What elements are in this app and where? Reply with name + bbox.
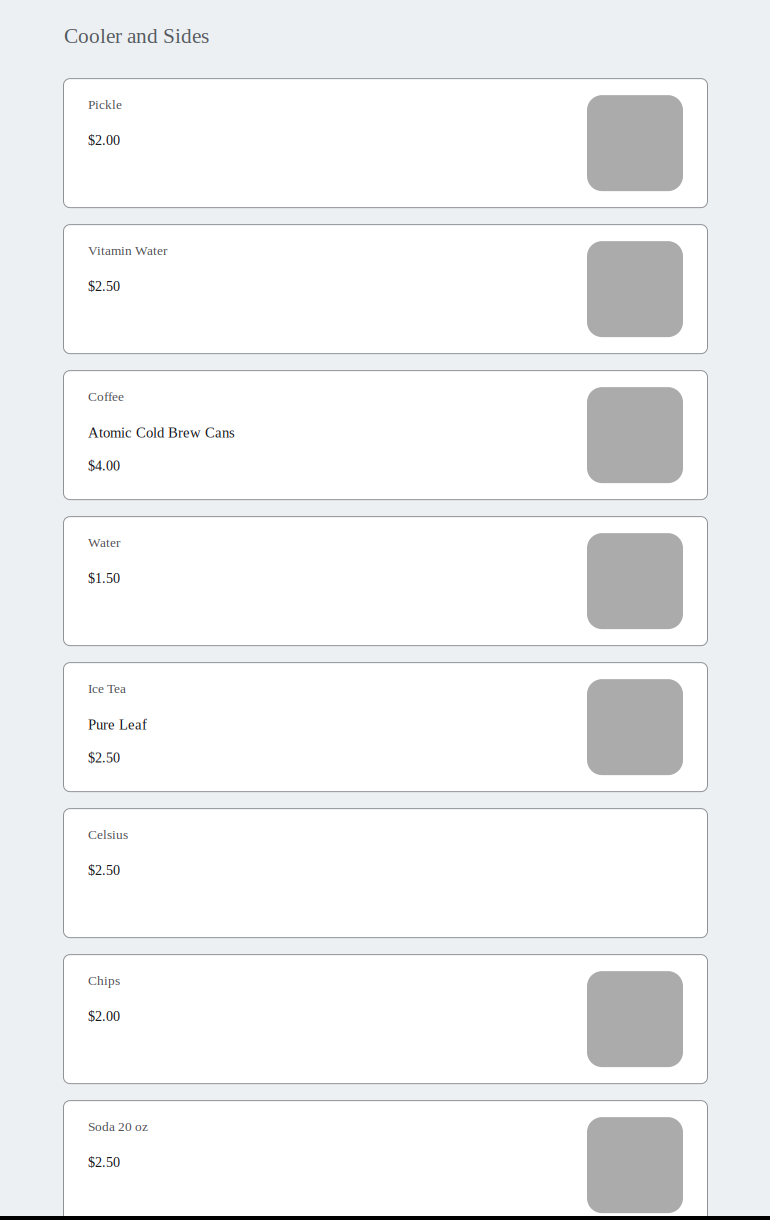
- staticText: Chips: [88, 973, 120, 988]
- staticText: Cooler and Sides: [64, 24, 209, 48]
- staticText: $2.50: [88, 862, 120, 878]
- button[interactable]: Vitamin Water: [63, 224, 708, 354]
- button[interactable]: Ice Tea: [63, 662, 708, 792]
- staticText: Pickle: [88, 97, 122, 112]
- button[interactable]: Soda 20 oz: [63, 1100, 708, 1220]
- staticText: Celsius: [88, 827, 128, 842]
- staticText: Ice Tea: [88, 681, 126, 696]
- staticText: Soda 20 oz: [88, 1119, 148, 1134]
- staticText: Vitamin Water: [88, 243, 167, 258]
- staticText: $2.50: [88, 750, 120, 766]
- button[interactable]: Water: [63, 516, 708, 646]
- staticText: Coffee: [88, 389, 124, 404]
- staticText: Pure Leaf: [88, 716, 147, 732]
- button[interactable]: Coffee: [63, 370, 708, 500]
- button[interactable]: Celsius: [63, 808, 708, 938]
- staticText: $2.00: [88, 1008, 120, 1024]
- staticText: $2.00: [88, 132, 120, 148]
- staticText: Atomic Cold Brew Cans: [88, 424, 235, 440]
- button[interactable]: Pickle: [63, 78, 708, 208]
- staticText: $2.50: [88, 278, 120, 294]
- staticText: $1.50: [88, 570, 120, 586]
- button[interactable]: Chips: [63, 954, 708, 1084]
- staticText: $2.50: [88, 1154, 120, 1170]
- staticText: $4.00: [88, 458, 120, 474]
- staticText: Water: [88, 535, 120, 550]
